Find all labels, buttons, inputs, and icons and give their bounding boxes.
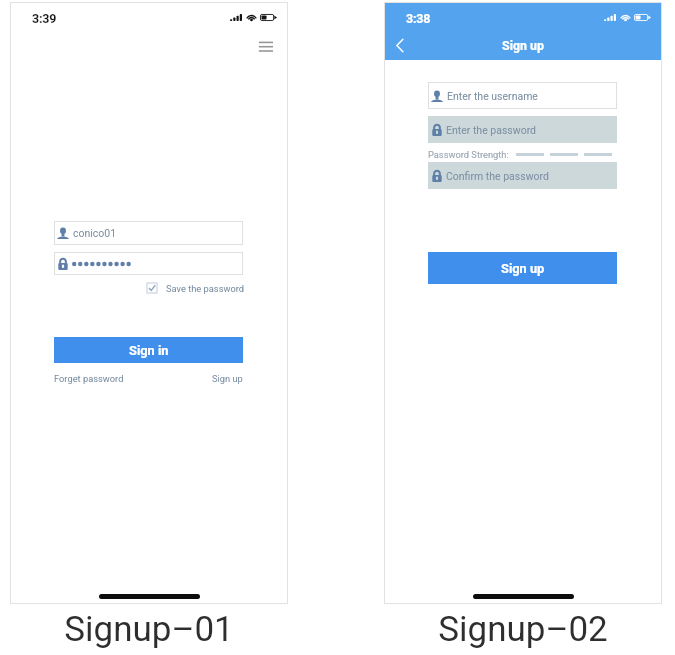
button[interactable]: Sign up [212,373,243,384]
staticText: Enter the username [447,90,538,102]
staticText: 3:39 [32,11,57,26]
button[interactable]: Enter the username [428,82,617,109]
staticText: Sign in [129,343,169,358]
button[interactable]: Forget password [54,373,124,384]
button[interactable]: Sign up [428,252,617,284]
button[interactable]: Save the password [147,282,245,294]
staticText: Save the password [166,283,245,294]
staticText: 3:38 [406,11,431,26]
staticText: Signup–02 [384,609,662,650]
staticText: Sign up [501,261,545,276]
button[interactable]: Back [389,34,411,56]
button[interactable] [54,252,243,275]
staticText: Sign up [502,38,544,53]
staticText: conico01 [73,227,117,239]
button[interactable]: Confirm the password [428,162,617,189]
button[interactable]: Enter the password [428,116,617,143]
staticText: Signup–01 [10,609,288,650]
button[interactable]: conico01 [54,221,243,245]
staticText: Confirm the password [446,170,549,182]
button[interactable]: Sign in [54,337,243,363]
staticText: Enter the password [446,124,537,136]
button[interactable]: Menu [255,37,279,57]
staticText: Password Strength: [428,149,509,160]
